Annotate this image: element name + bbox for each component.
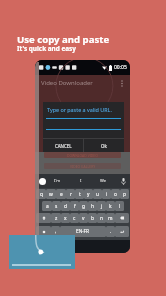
- staticText: VIDEO GALLERY: [70, 164, 96, 169]
- staticText: q: [40, 191, 43, 198]
- staticText: j: [101, 203, 103, 210]
- staticText: .: [110, 228, 112, 235]
- staticText: w: [49, 191, 53, 198]
- staticText: v: [82, 215, 85, 222]
- staticText: It's quick and easy: [17, 44, 76, 53]
- button[interactable]: w: [46, 189, 56, 199]
- button[interactable]: y: [84, 189, 93, 199]
- button[interactable]: n: [97, 213, 106, 223]
- button[interactable]: Ok: [84, 139, 124, 152]
- button[interactable]: .: [106, 226, 115, 237]
- staticText: t: [79, 191, 81, 198]
- button[interactable]: i: [102, 189, 111, 199]
- staticText: EN·FR: [76, 228, 90, 235]
- button[interactable]: More options: [116, 78, 127, 89]
- button[interactable]: z: [51, 213, 61, 223]
- staticText: i: [106, 191, 108, 198]
- staticText: f: [74, 203, 76, 210]
- staticText: h: [91, 203, 94, 210]
- button[interactable]: b: [88, 213, 97, 223]
- staticText: DOWNLOAD VIDEO: [67, 153, 98, 158]
- staticText: c: [73, 215, 76, 222]
- button[interactable]: s: [52, 201, 61, 211]
- button[interactable]: VIDEO GALLERY: [44, 163, 121, 169]
- button[interactable]: o: [111, 189, 120, 199]
- button[interactable]: q: [36, 189, 46, 199]
- button[interactable]: a: [42, 201, 52, 211]
- button[interactable]: j: [97, 201, 106, 211]
- button[interactable]: v: [79, 213, 88, 223]
- staticText: Type or paste a valid URL.: [47, 106, 112, 113]
- staticText: z: [55, 215, 58, 222]
- staticText: Video Downloader: [41, 79, 93, 87]
- button[interactable]: k: [106, 201, 115, 211]
- button[interactable]: h: [88, 201, 97, 211]
- staticText: k: [109, 203, 112, 210]
- staticText: x: [64, 215, 67, 222]
- button[interactable]: p: [120, 189, 129, 199]
- staticText: Ok: [101, 143, 107, 149]
- staticText: b: [91, 215, 94, 222]
- button[interactable]: e: [56, 189, 66, 199]
- staticText: Use copy and paste: [17, 33, 110, 46]
- staticText: I: [80, 178, 82, 184]
- button[interactable]: x: [61, 213, 70, 223]
- staticText: s: [55, 203, 58, 210]
- staticText: d: [64, 203, 67, 210]
- staticText: r: [70, 191, 72, 198]
- button[interactable]: t: [75, 189, 84, 199]
- staticText: We: [100, 178, 107, 184]
- button[interactable]: Symbols: [36, 226, 51, 237]
- staticText: y: [87, 191, 90, 198]
- button[interactable]: d: [61, 201, 70, 211]
- button[interactable]: c: [70, 213, 79, 223]
- button[interactable]: DOWNLOAD VIDEO: [44, 152, 121, 158]
- staticText: 00:05: [114, 64, 127, 71]
- staticText: u: [96, 191, 99, 198]
- button[interactable]: f: [70, 201, 79, 211]
- button[interactable]: Voice input: [121, 178, 126, 185]
- button[interactable]: u: [93, 189, 102, 199]
- button[interactable]: g: [79, 201, 88, 211]
- staticText: e: [60, 191, 63, 198]
- button[interactable]: Keyboard menu: [39, 178, 46, 185]
- staticText: m: [108, 215, 113, 222]
- staticText: a: [46, 203, 49, 210]
- button[interactable]: EN·FR: [60, 226, 106, 237]
- button[interactable]: CANCEL: [43, 139, 83, 152]
- staticText: I'm: [54, 178, 61, 184]
- button[interactable]: r: [66, 189, 75, 199]
- staticText: l: [119, 203, 121, 210]
- button[interactable]: ,: [51, 226, 60, 237]
- staticText: ,: [55, 228, 57, 235]
- button[interactable]: Enter: [115, 226, 129, 237]
- staticText: n: [100, 215, 103, 222]
- button[interactable]: m: [106, 213, 115, 223]
- button[interactable]: Backspace: [115, 213, 129, 223]
- button[interactable]: l: [115, 201, 124, 211]
- staticText: p: [123, 191, 126, 198]
- button[interactable]: Shift: [36, 213, 51, 223]
- staticText: CANCEL: [55, 143, 72, 149]
- button[interactable]: [9, 235, 75, 269]
- staticText: g: [82, 203, 85, 210]
- staticText: o: [114, 191, 117, 198]
